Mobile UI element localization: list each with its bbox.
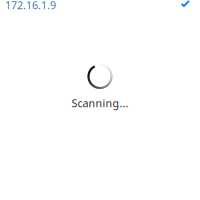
staticText: Scanning...	[71, 96, 128, 110]
button[interactable]: Done	[170, 0, 190, 10]
button[interactable]: 172.16.1.9	[5, 0, 56, 12]
staticText: 172.16.1.9	[5, 0, 56, 12]
